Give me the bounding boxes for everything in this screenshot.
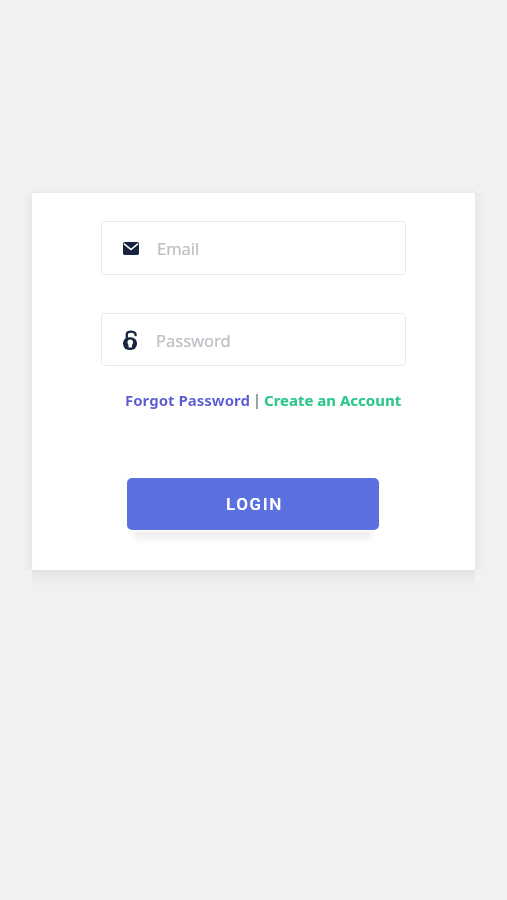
other: Email [123,242,139,255]
button[interactable]: Password [101,313,406,366]
staticText: Email [157,237,200,259]
staticText: Forgot Password [125,390,250,410]
button[interactable]: Email [101,221,406,275]
button[interactable]: Forgot Password [125,390,250,410]
button[interactable]: Create an Account [264,390,402,410]
staticText: LOGIN [226,494,283,514]
staticText: Password [156,329,231,351]
staticText: Create an Account [264,390,402,410]
other: Password [123,330,137,350]
button[interactable]: LOGIN [127,478,379,530]
